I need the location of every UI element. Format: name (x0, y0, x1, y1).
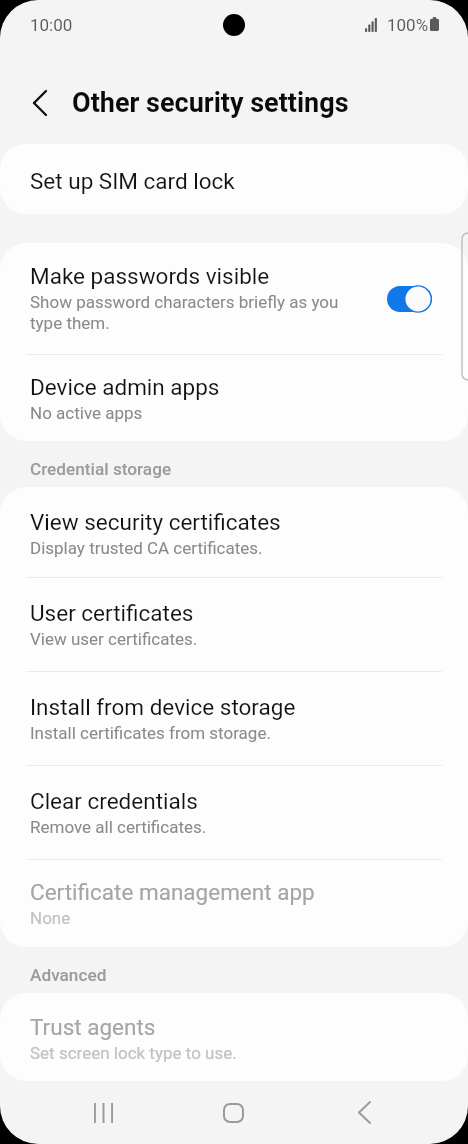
staticText: Install certificates from storage. (30, 723, 271, 743)
staticText: Set screen lock type to use. (30, 1043, 237, 1063)
staticText: Clear credentials (30, 788, 198, 814)
staticText: None (30, 908, 71, 928)
button[interactable]: Make passwords visible (0, 243, 468, 354)
staticText: View security certificates (30, 509, 281, 535)
staticText: Show password characters briefly as you … (30, 292, 348, 333)
button[interactable]: Clear credentials (0, 766, 468, 859)
staticText: Display trusted CA certificates. (30, 538, 263, 558)
staticText: No active apps (30, 403, 143, 423)
staticText: Device admin apps (30, 374, 220, 400)
button[interactable]: Make passwords visible toggle (386, 283, 432, 315)
button[interactable]: Device admin apps (0, 355, 468, 441)
button[interactable]: Certificate management app (0, 860, 468, 947)
staticText: 100% (387, 15, 429, 35)
staticText: Credential storage (30, 459, 172, 479)
staticText: Other security settings (72, 87, 349, 119)
staticText: Make passwords visible (30, 263, 270, 289)
button[interactable]: Navigate back (18, 81, 62, 125)
staticText: 10:00 (30, 15, 73, 35)
button[interactable]: Trust agents (0, 993, 468, 1081)
button[interactable]: Home (168, 1081, 299, 1144)
staticText: Advanced (30, 965, 107, 985)
staticText: Trust agents (30, 1014, 156, 1040)
staticText: Set up SIM card lock (30, 168, 235, 194)
button[interactable]: Recent apps (38, 1081, 168, 1144)
staticText: Install from device storage (30, 694, 296, 720)
button[interactable]: Install from device storage (0, 672, 468, 765)
button[interactable]: View security certificates (0, 487, 468, 577)
staticText: Certificate management app (30, 879, 315, 905)
staticText: Remove all certificates. (30, 817, 207, 837)
staticText: View user certificates. (30, 629, 198, 649)
staticText: User certificates (30, 600, 194, 626)
button[interactable]: Set up SIM card lock (0, 144, 468, 214)
button[interactable]: User certificates (0, 578, 468, 671)
button[interactable]: Back (299, 1081, 430, 1144)
